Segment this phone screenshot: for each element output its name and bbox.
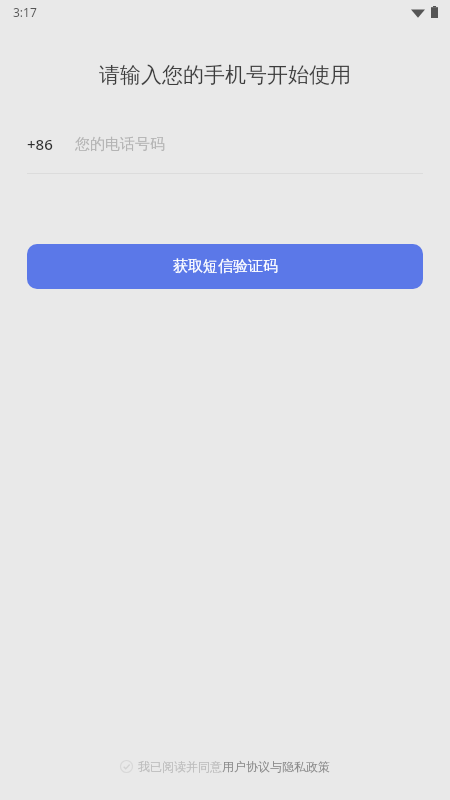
staticText: 获取短信验证码 [173,257,278,276]
staticText: +86 [27,134,53,154]
other: Agree checkbox [120,760,133,773]
staticText: 3:17 [13,4,37,20]
button[interactable]: +86 [27,128,423,160]
button[interactable]: Agree checkbox [0,759,450,774]
staticText: 我已阅读并同意 [138,759,222,774]
staticText: 请输入您的手机号开始使用 [0,62,450,88]
staticText: 用户协议与隐私政策 [222,759,330,774]
staticText: 您的电话号码 [75,135,165,154]
button[interactable]: 获取短信验证码 [27,244,423,289]
